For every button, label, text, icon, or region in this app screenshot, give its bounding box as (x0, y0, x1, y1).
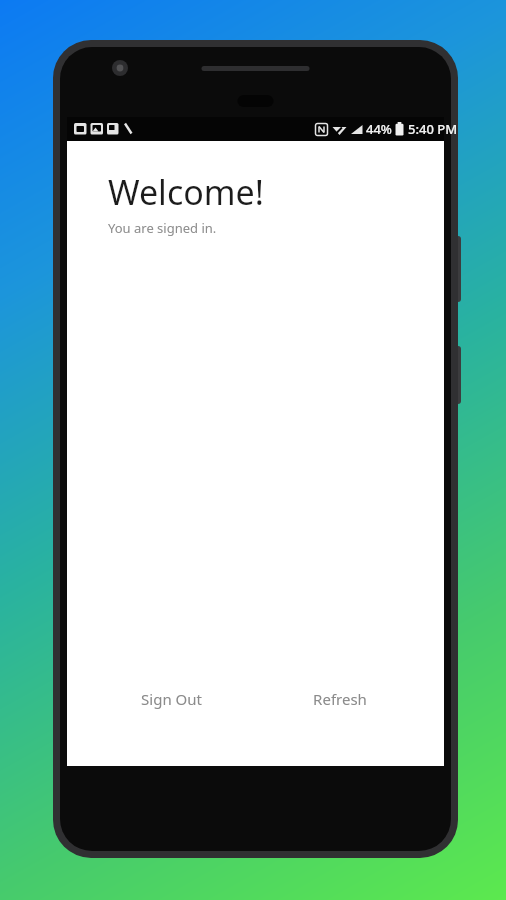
staticText: You are signed in. (108, 219, 217, 237)
staticText: Welcome! (108, 169, 264, 215)
staticText: Sign Out (141, 689, 202, 709)
staticText: 44% (366, 120, 392, 138)
staticText: Refresh (313, 689, 367, 709)
button[interactable]: Refresh (255, 679, 424, 719)
button[interactable]: Sign Out (87, 679, 255, 719)
staticText: 5:40 PM (408, 120, 458, 138)
